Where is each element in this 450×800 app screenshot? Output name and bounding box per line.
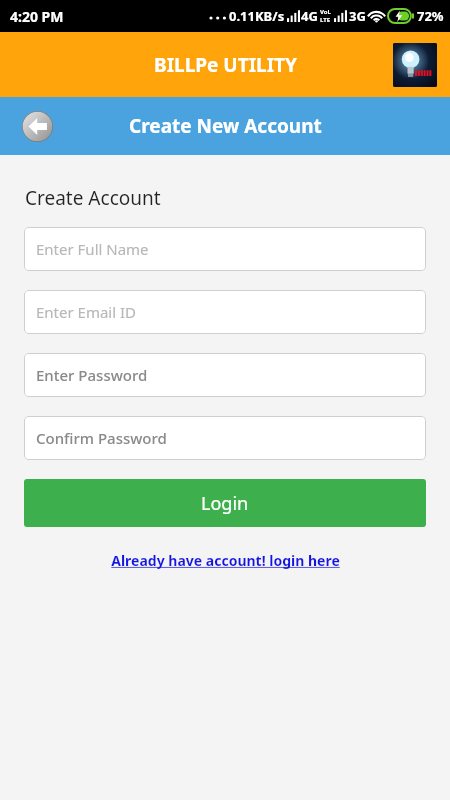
- staticText: LTE: [320, 16, 331, 24]
- staticText: Enter Full Name: [36, 239, 149, 259]
- staticText: BILLPe UTILITY: [154, 52, 297, 78]
- staticText: Enter Password: [36, 365, 148, 385]
- staticText: 3G: [349, 7, 366, 25]
- staticText: Login: [201, 491, 249, 516]
- button[interactable]: Back: [22, 111, 53, 142]
- staticText: VoL: [320, 8, 331, 16]
- staticText: Create Account: [25, 185, 161, 211]
- staticText: 72%: [417, 7, 444, 25]
- button[interactable]: Enter Full Name: [24, 227, 426, 271]
- button[interactable]: Enter Password: [24, 353, 426, 397]
- staticText: 4:20 PM: [10, 7, 64, 26]
- button[interactable]: Login: [24, 479, 426, 527]
- staticText: Confirm Password: [36, 428, 167, 448]
- button[interactable]: Enter Email ID: [24, 290, 426, 334]
- button[interactable]: Confirm Password: [24, 416, 426, 460]
- staticText: 0.11KB/s: [229, 7, 285, 25]
- staticText: Create New Account: [129, 113, 322, 139]
- staticText: Enter Email ID: [36, 302, 137, 322]
- staticText: 4G: [301, 7, 318, 25]
- button[interactable]: BillPe logo: [393, 43, 437, 87]
- button[interactable]: Already have account! login here: [105, 549, 346, 572]
